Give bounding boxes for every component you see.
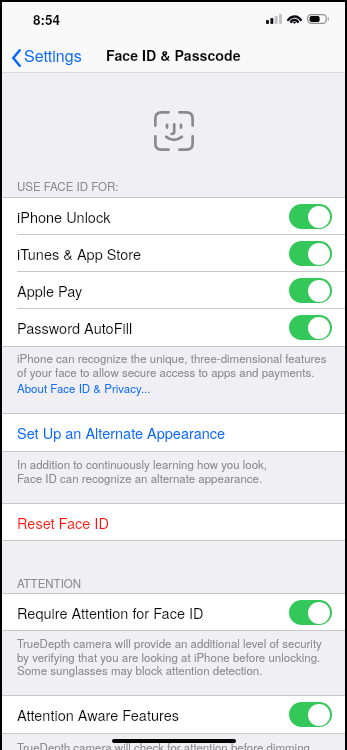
button[interactable]: Toggle <box>289 315 332 340</box>
staticText: Face ID & Passcode <box>106 45 241 65</box>
button[interactable]: Toggle <box>289 278 332 303</box>
staticText: TrueDepth camera will provide an additio… <box>17 635 322 678</box>
button[interactable]: Toggle <box>289 702 332 727</box>
staticText: iTunes & App Store <box>17 243 142 264</box>
button[interactable]: Toggle <box>289 241 332 266</box>
staticText: USE FACE ID FOR: <box>17 178 119 194</box>
staticText: Password AutoFill <box>17 317 133 338</box>
button[interactable]: iPhone Unlock <box>2 198 345 234</box>
button[interactable]: Toggle <box>289 204 332 229</box>
button[interactable]: iTunes & App Store <box>2 235 345 271</box>
staticText: Reset Face ID <box>17 512 109 533</box>
staticText: 8:54 <box>33 10 61 29</box>
staticText: Attention Aware Features <box>17 704 180 725</box>
button[interactable]: Toggle <box>289 600 332 625</box>
button[interactable]: Apple Pay <box>2 272 345 308</box>
staticText: Require Attention for Face ID <box>17 602 204 623</box>
staticText: Apple Pay <box>17 280 83 301</box>
button[interactable]: Attention Aware Features <box>2 696 345 733</box>
button[interactable]: Settings <box>2 38 92 73</box>
staticText: Set Up an Alternate Appearance <box>17 422 226 443</box>
button[interactable]: About Face ID & Privacy... <box>17 380 151 396</box>
staticText: Settings <box>24 44 82 67</box>
staticText: ATTENTION <box>17 575 82 591</box>
button[interactable]: Password AutoFill <box>2 309 345 345</box>
button[interactable]: Reset Face ID <box>2 504 345 540</box>
staticText: In addition to continuously learning how… <box>17 456 268 486</box>
staticText: iPhone Unlock <box>17 206 111 227</box>
staticText: TrueDepth camera will check for attentio… <box>17 739 310 750</box>
button[interactable]: Require Attention for Face ID <box>2 594 345 630</box>
button[interactable]: Set Up an Alternate Appearance <box>2 414 345 451</box>
staticText: iPhone can recognize the unique, three-d… <box>17 350 327 380</box>
